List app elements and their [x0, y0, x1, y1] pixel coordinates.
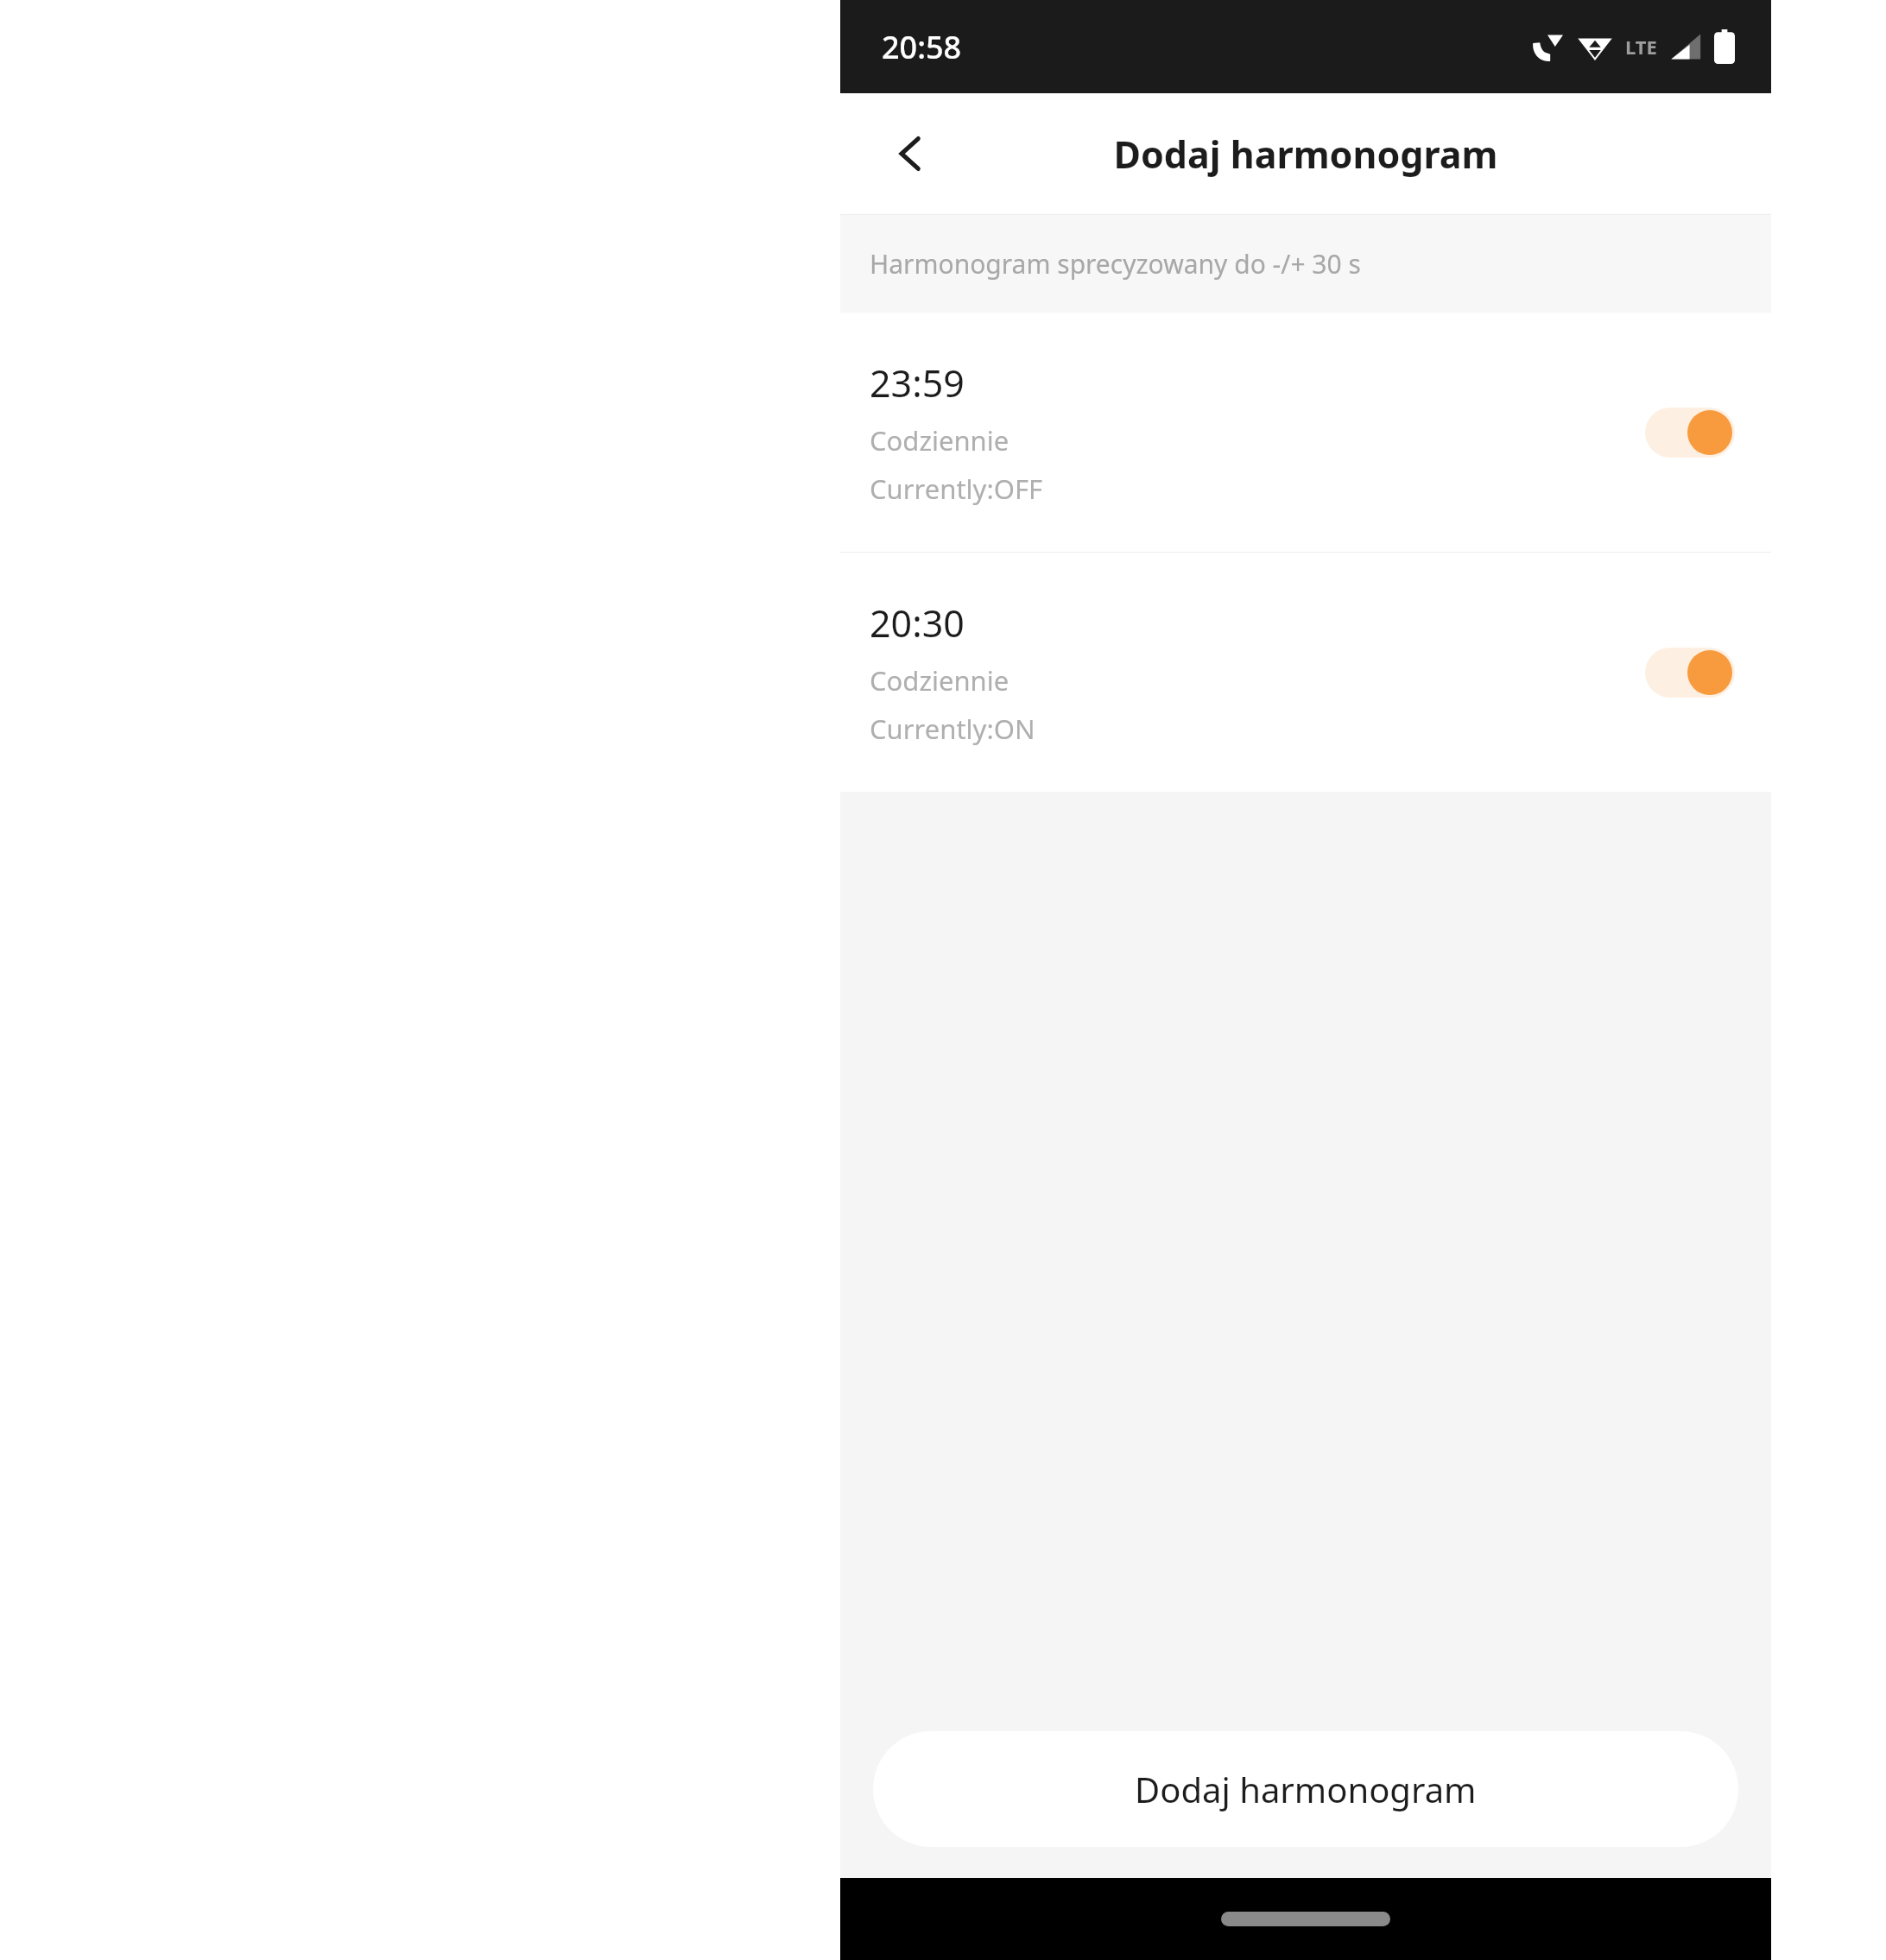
button[interactable]: 20:30: [840, 553, 1771, 792]
staticText: Currently:ON: [870, 711, 1035, 747]
button[interactable]: Back: [870, 112, 952, 195]
staticText: LTE: [1625, 34, 1657, 60]
button[interactable]: 23:59: [840, 313, 1771, 552]
staticText: Currently:OFF: [870, 471, 1043, 507]
button[interactable]: Toggle schedule: [1645, 408, 1735, 458]
staticText: 20:58: [882, 26, 962, 68]
staticText: 23:59: [870, 357, 965, 408]
staticText: Dodaj harmonogram: [1135, 1766, 1477, 1812]
staticText: Codziennie: [870, 422, 1009, 458]
staticText: 20:30: [870, 597, 965, 648]
button[interactable]: Toggle schedule: [1645, 648, 1735, 698]
staticText: Harmonogram sprecyzowany do -/+ 30 s: [870, 246, 1361, 281]
button[interactable]: Dodaj harmonogram: [873, 1731, 1738, 1847]
staticText: Codziennie: [870, 662, 1009, 699]
staticText: Dodaj harmonogram: [1113, 129, 1498, 180]
